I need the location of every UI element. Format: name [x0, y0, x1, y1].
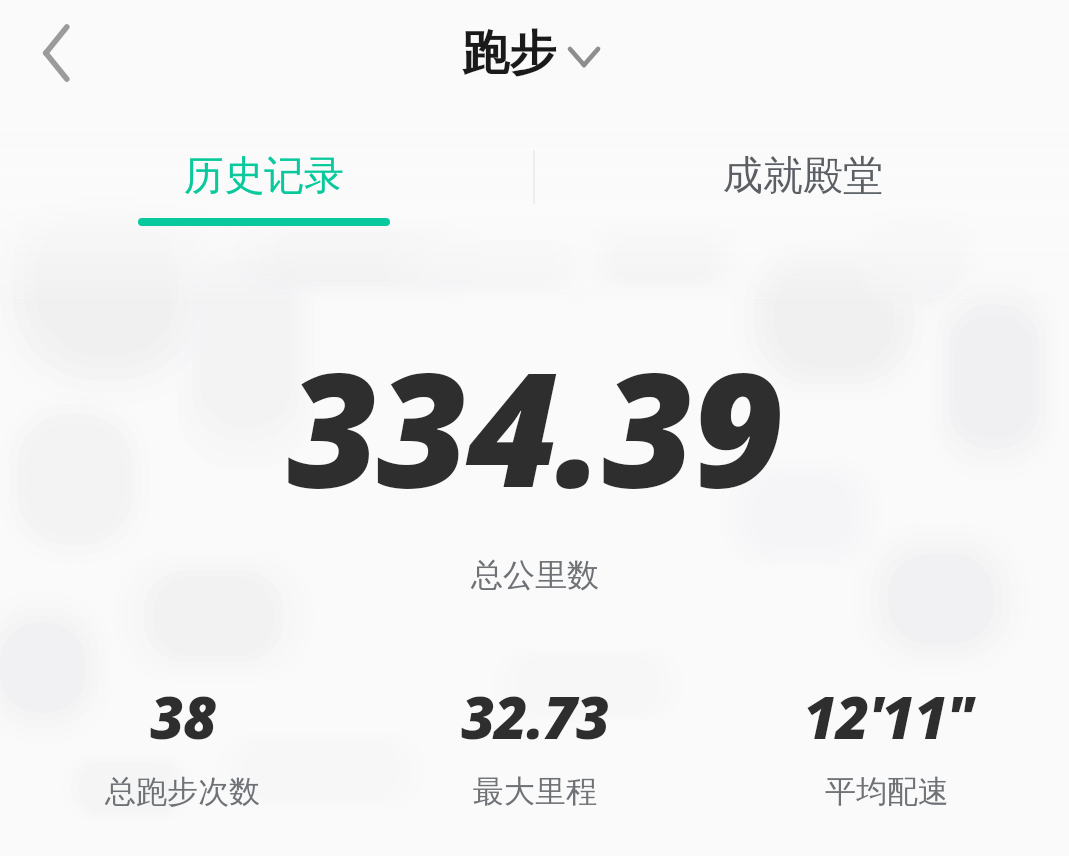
staticText: 历史记录 [184, 150, 344, 200]
button[interactable]: Choose sport type [560, 33, 608, 81]
button[interactable]: 12'11" [711, 677, 1063, 811]
button[interactable]: Back [8, 5, 104, 101]
staticText: 334.39 [287, 318, 782, 533]
button[interactable]: 跑步 [462, 24, 608, 83]
staticText: 最大里程 [473, 772, 597, 811]
button[interactable]: 32.73 [359, 677, 711, 811]
staticText: 成就殿堂 [723, 150, 883, 200]
staticText: 38 [150, 677, 216, 756]
staticText: 总跑步次数 [105, 772, 260, 811]
button[interactable]: 成就殿堂 [677, 150, 929, 200]
staticText: 平均配速 [825, 772, 949, 811]
button[interactable]: 历史记录 [138, 106, 390, 226]
staticText: 跑步 [462, 24, 556, 83]
staticText: 总公里数 [471, 555, 599, 595]
staticText: 12'11" [803, 677, 972, 756]
staticText: 32.73 [461, 677, 609, 756]
button[interactable]: 38 [6, 677, 359, 811]
